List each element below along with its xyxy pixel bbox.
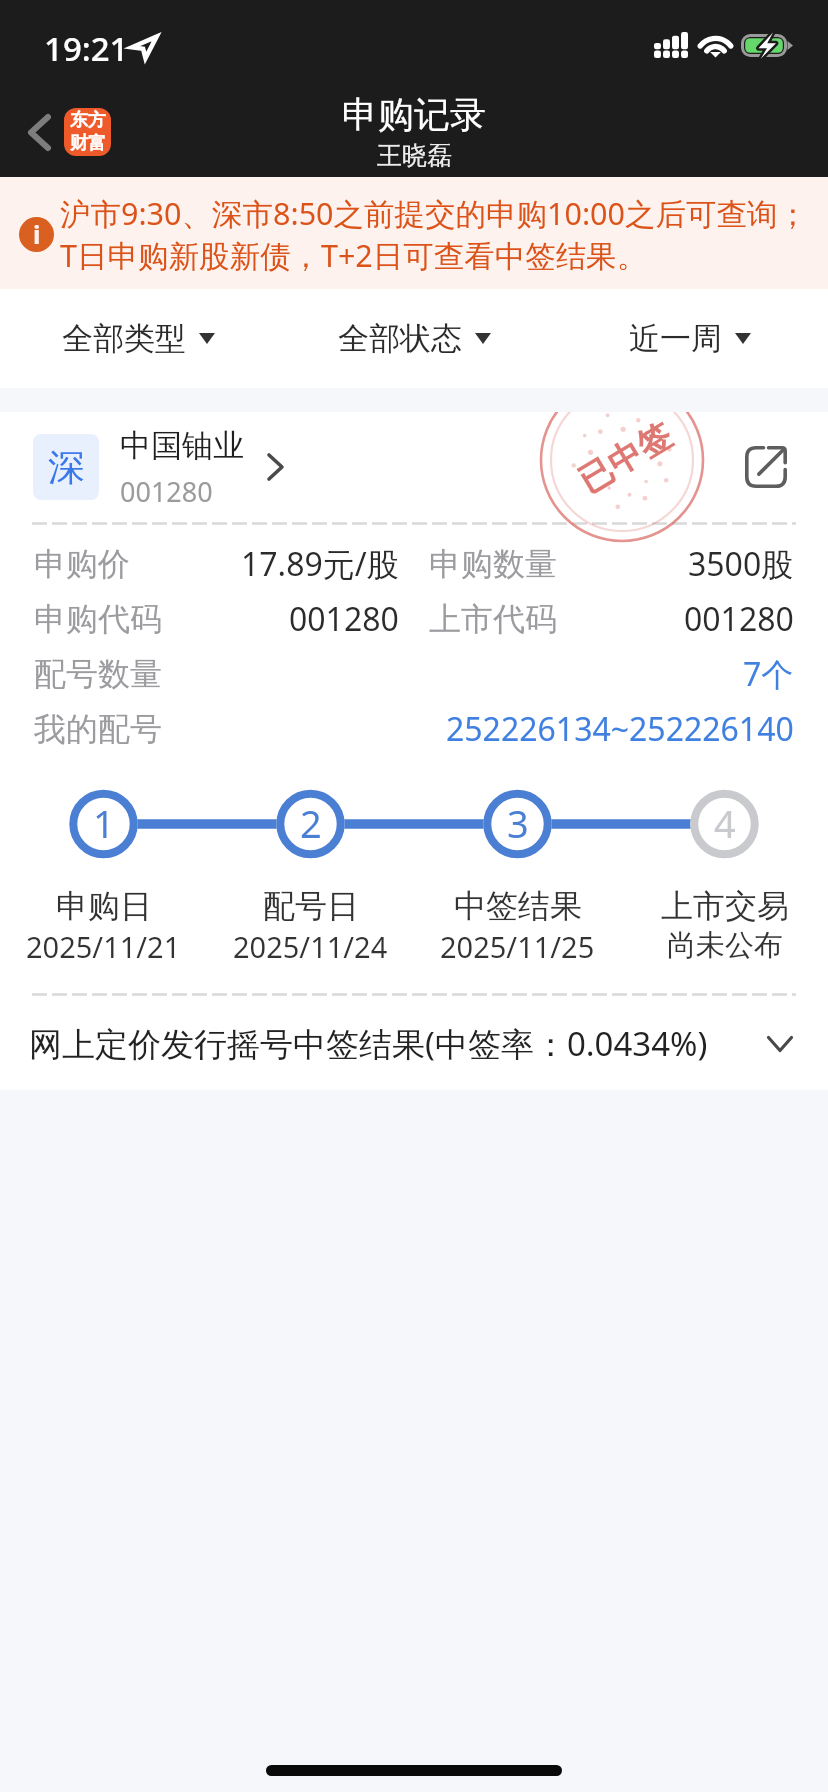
staticText: 深 <box>48 444 85 491</box>
staticText: 2025/11/21 <box>26 927 181 966</box>
button[interactable]: Stock details <box>251 443 299 491</box>
staticText: 申购记录 <box>342 92 486 137</box>
staticText: 沪市9:30、深市8:50之前提交的申购10:00之后可查询； <box>60 192 808 234</box>
staticText: i <box>33 217 41 251</box>
staticText: 1 <box>93 797 115 849</box>
staticText: 东方 <box>70 109 106 132</box>
button[interactable]: Open in new window <box>734 435 798 499</box>
staticText: 配号数量 <box>34 654 162 694</box>
button[interactable]: Back <box>8 101 70 163</box>
button[interactable]: 网上定价发行摇号中签结果(中签率：0.0434%) <box>0 996 828 1090</box>
staticText: 中国铀业 <box>120 426 244 465</box>
staticText: 中签结果 <box>454 886 582 926</box>
staticText: 19:21 <box>44 26 129 71</box>
staticText: 近一周 <box>629 319 722 358</box>
staticText: 001280 <box>289 597 399 641</box>
staticText: 17.89元/股 <box>241 542 399 586</box>
button[interactable]: 全部类型 <box>0 289 276 388</box>
staticText: 申购数量 <box>429 544 557 584</box>
staticText: 3500股 <box>688 542 794 586</box>
staticText: 网上定价发行摇号中签结果(中签率：0.0434%) <box>29 1021 708 1066</box>
staticText: 申购价 <box>34 544 130 584</box>
staticText: 4 <box>714 797 736 849</box>
staticText: 全部状态 <box>338 319 462 358</box>
staticText: 尚未公布 <box>667 927 783 964</box>
staticText: 申购代码 <box>34 599 162 639</box>
staticText: 全部类型 <box>62 319 186 358</box>
staticText: 申购日 <box>56 886 152 926</box>
staticText: 2025/11/25 <box>440 927 595 966</box>
staticText: 上市交易 <box>661 886 789 926</box>
staticText: 王晓磊 <box>377 140 452 171</box>
staticText: 财富 <box>70 132 106 155</box>
staticText: 2025/11/24 <box>233 927 388 966</box>
button[interactable]: 全部状态 <box>276 289 552 388</box>
staticText: 252226134~252226140 <box>446 707 794 751</box>
staticText: 2 <box>300 797 322 849</box>
staticText: T日申购新股新债，T+2日可查看中签结果。 <box>60 234 648 276</box>
staticText: 已中签 <box>570 414 680 502</box>
button[interactable]: 近一周 <box>552 289 828 388</box>
staticText: 我的配号 <box>34 709 162 749</box>
button[interactable]: 东方 <box>64 108 111 156</box>
staticText: 3 <box>507 797 529 849</box>
staticText: 上市代码 <box>429 599 557 639</box>
staticText: 001280 <box>120 473 213 510</box>
staticText: 配号日 <box>263 886 359 926</box>
staticText: 001280 <box>684 597 794 641</box>
staticText: 7个 <box>743 652 794 696</box>
